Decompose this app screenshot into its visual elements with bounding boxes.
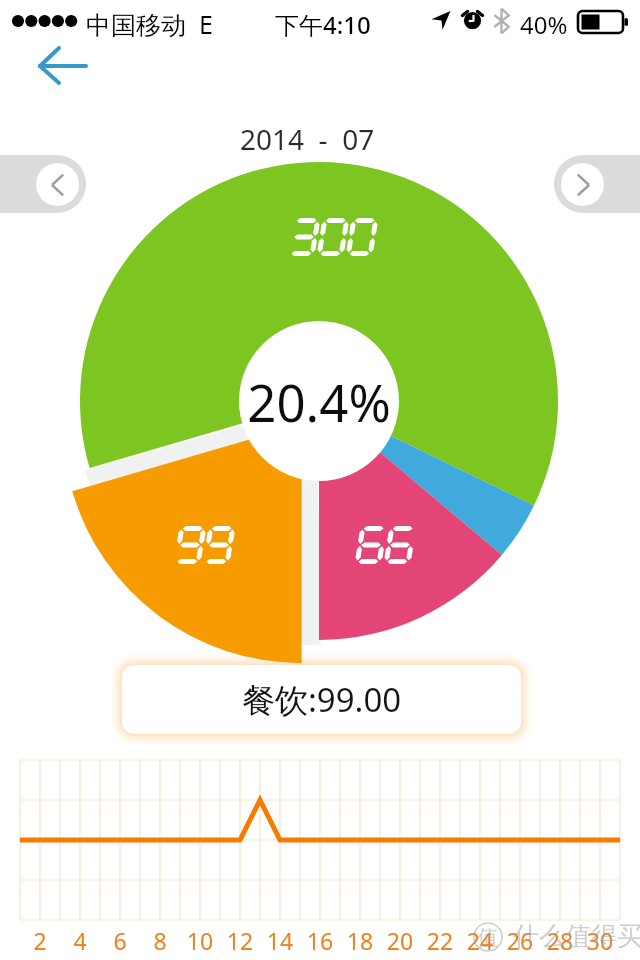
staticText: 4: [60, 925, 100, 956]
staticText: 12: [220, 925, 260, 956]
staticText: 40%: [520, 8, 568, 41]
button[interactable]: 餐饮:99.00: [122, 665, 521, 734]
staticText: 16: [300, 925, 340, 956]
staticText: 18: [340, 925, 380, 956]
staticText: 24: [460, 925, 500, 956]
staticText: 20.4%: [229, 367, 409, 436]
staticText: 值: [477, 925, 498, 951]
staticText: 30: [580, 925, 620, 956]
button[interactable]: Next month: [554, 155, 640, 213]
button[interactable]: Back: [22, 42, 102, 92]
staticText: 8: [140, 925, 180, 956]
button[interactable]: Previous month: [0, 155, 86, 213]
staticText: 2: [20, 925, 60, 956]
staticText: 中国移动 E: [86, 7, 213, 41]
staticText: 10: [180, 925, 220, 956]
staticText: 14: [260, 925, 300, 956]
staticText: 26: [500, 925, 540, 956]
staticText: 下午4:10: [275, 8, 371, 41]
staticText: 什么值得买: [513, 920, 640, 953]
staticText: 28: [540, 925, 580, 956]
staticText: 餐饮:99.00: [242, 677, 402, 722]
staticText: 22: [420, 925, 460, 956]
staticText: 2014 - 07: [240, 120, 375, 158]
staticText: 6: [100, 925, 140, 956]
staticText: 20: [380, 925, 420, 956]
